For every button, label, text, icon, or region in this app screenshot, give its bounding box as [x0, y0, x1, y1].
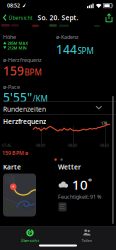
staticText: 08:10: [36, 143, 45, 148]
button[interactable]: Übersicht: [3, 13, 32, 22]
button[interactable]: [105, 13, 113, 22]
staticText: /KM: [33, 94, 48, 104]
staticText: BPM: [25, 67, 42, 78]
staticText: SPM: [78, 46, 94, 56]
staticText: 144: [56, 41, 77, 57]
staticText: Übersicht: [20, 238, 39, 243]
staticText: 5'55": [3, 89, 32, 105]
staticText: 10: [72, 176, 88, 193]
staticText: 07:46: [2, 143, 11, 148]
staticText: Herzfrequenz: [3, 117, 46, 126]
staticText: 159 BPM ø: [2, 149, 28, 157]
staticText: 178: [101, 121, 107, 126]
staticText: Höhe: [3, 33, 16, 41]
button[interactable]: Teilen: [61, 228, 113, 244]
staticText: 08:52: [7, 2, 20, 9]
staticText: ø-Pace: [3, 83, 20, 91]
button[interactable]: [3, 173, 36, 216]
staticText: Karte: [3, 162, 21, 171]
staticText: Übersicht: [8, 14, 32, 21]
staticText: 159: [3, 63, 24, 79]
staticText: ø-Kadenz: [56, 33, 79, 41]
button[interactable]: Übersicht: [4, 228, 56, 244]
staticText: 08:50: [100, 143, 109, 148]
staticText: Feuchtigkeit: 91 %: [58, 193, 101, 200]
button[interactable]: 10: [58, 163, 114, 213]
staticText: 212M MIN: [8, 45, 27, 50]
staticText: So. 20. Sept.: [37, 13, 78, 22]
staticText: 285M MAX: [8, 41, 29, 46]
staticText: °: [88, 176, 92, 188]
staticText: 08:30: [68, 143, 77, 148]
staticText: Rundenzeiten: [3, 105, 46, 114]
staticText: Wetter: [58, 162, 81, 171]
staticText: Teilen: [81, 238, 92, 243]
staticText: ø-Herzfrequenz: [3, 56, 42, 64]
button[interactable]: Rundenzeiten: [0, 102, 116, 115]
